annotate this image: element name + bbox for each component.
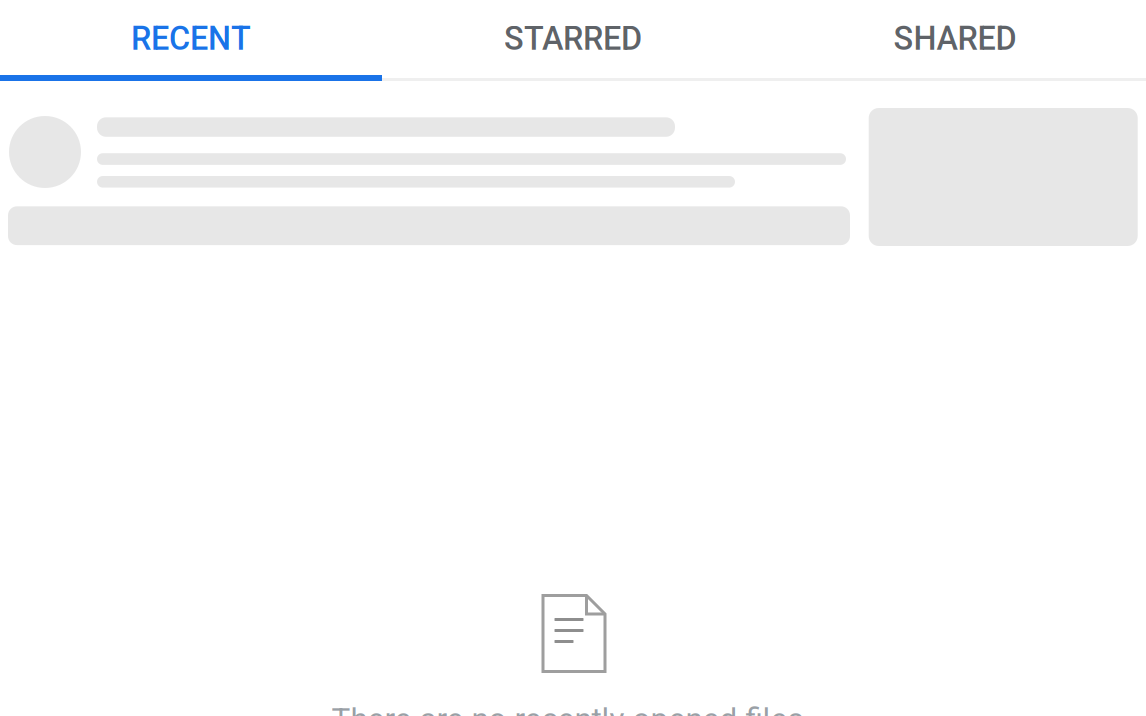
button[interactable]: RECENT (0, 0, 382, 75)
button[interactable]: SHARED (764, 0, 1146, 75)
staticText: There are no recently opened files (331, 701, 803, 716)
staticText: RECENT (131, 20, 251, 58)
staticText: SHARED (893, 20, 1016, 58)
button[interactable]: STARRED (382, 0, 764, 75)
staticText: STARRED (504, 20, 642, 58)
